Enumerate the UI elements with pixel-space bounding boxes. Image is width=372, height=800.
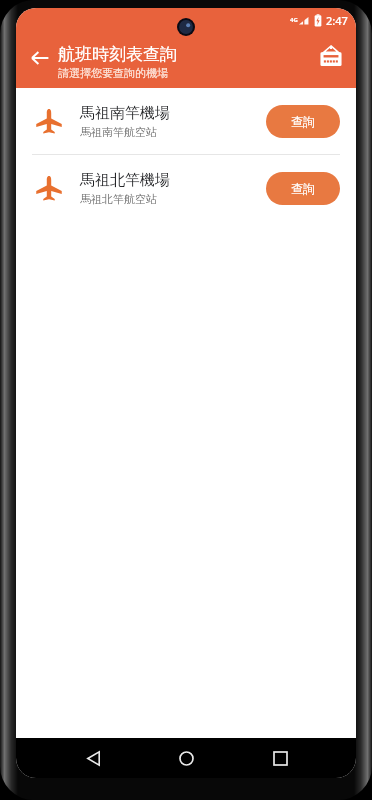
staticText: 請選擇您要查詢的機場 [58,66,168,80]
staticText: 馬祖北竿航空站 [80,192,157,206]
button[interactable]: 馬祖南竿機場 [16,88,356,154]
button[interactable]: 查詢 [266,105,340,138]
staticText: 馬祖南竿機場 [80,104,170,123]
staticText: 馬祖南竿航空站 [80,125,157,139]
button[interactable]: Hotel [314,40,348,74]
button[interactable]: Home [169,741,203,775]
staticText: 查詢 [291,114,315,129]
button[interactable]: Recent apps [263,741,297,775]
button[interactable]: 查詢 [266,172,340,205]
staticText: 4G [290,16,298,24]
staticText: 航班時刻表查詢 [58,44,177,65]
staticText: 查詢 [291,181,315,196]
button[interactable]: Back [22,40,58,76]
staticText: 馬祖北竿機場 [80,171,170,190]
button[interactable]: 馬祖北竿機場 [16,155,356,221]
staticText: 2:47 [326,13,348,28]
button[interactable]: Back [76,741,110,775]
